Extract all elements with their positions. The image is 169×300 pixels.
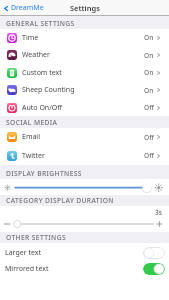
button[interactable]: Sheep Counting xyxy=(0,81,169,99)
staticText: Time xyxy=(22,33,39,43)
button[interactable]: Custom text xyxy=(0,64,169,81)
staticText: GENERAL SETTINGS xyxy=(6,19,75,28)
button[interactable]: Auto On/Off xyxy=(0,99,169,116)
button[interactable]: Category display duration xyxy=(0,218,169,230)
staticText: On xyxy=(144,86,154,95)
staticText: OTHER SETTINGS xyxy=(6,233,66,242)
button[interactable]: Back to DreamMe xyxy=(0,0,48,16)
button[interactable]: Weather xyxy=(0,46,169,64)
staticText: Email xyxy=(22,132,40,142)
staticText: Sheep Counting xyxy=(22,85,75,95)
staticText: On xyxy=(144,33,154,42)
button[interactable]: Time xyxy=(0,29,169,46)
staticText: Off xyxy=(144,151,154,160)
staticText: 3s xyxy=(155,208,162,217)
staticText: Off xyxy=(144,133,154,142)
staticText: Larger text xyxy=(5,248,41,258)
staticText: DreamMe xyxy=(11,3,44,13)
staticText: Weather xyxy=(22,50,50,60)
staticText: SOCIAL MEDIA xyxy=(6,118,58,127)
button[interactable]: Email xyxy=(0,128,169,146)
staticText: Off xyxy=(144,103,154,112)
staticText: CATEGORY DISPLAY DURATION xyxy=(6,196,114,205)
staticText: DISPLAY BRIGHTNESS xyxy=(6,169,82,178)
staticText: On xyxy=(144,51,154,60)
staticText: On xyxy=(144,68,154,77)
staticText: Twitter xyxy=(22,151,45,161)
button[interactable]: Display brightness xyxy=(0,179,169,195)
button[interactable]: Twitter xyxy=(0,146,169,165)
staticText: Mirrored text xyxy=(5,264,49,274)
staticText: Settings xyxy=(70,3,100,13)
button[interactable]: Larger text xyxy=(0,243,169,259)
button[interactable]: Mirrored text xyxy=(0,259,169,275)
staticText: Auto On/Off xyxy=(22,103,63,113)
staticText: Custom text xyxy=(22,68,62,78)
